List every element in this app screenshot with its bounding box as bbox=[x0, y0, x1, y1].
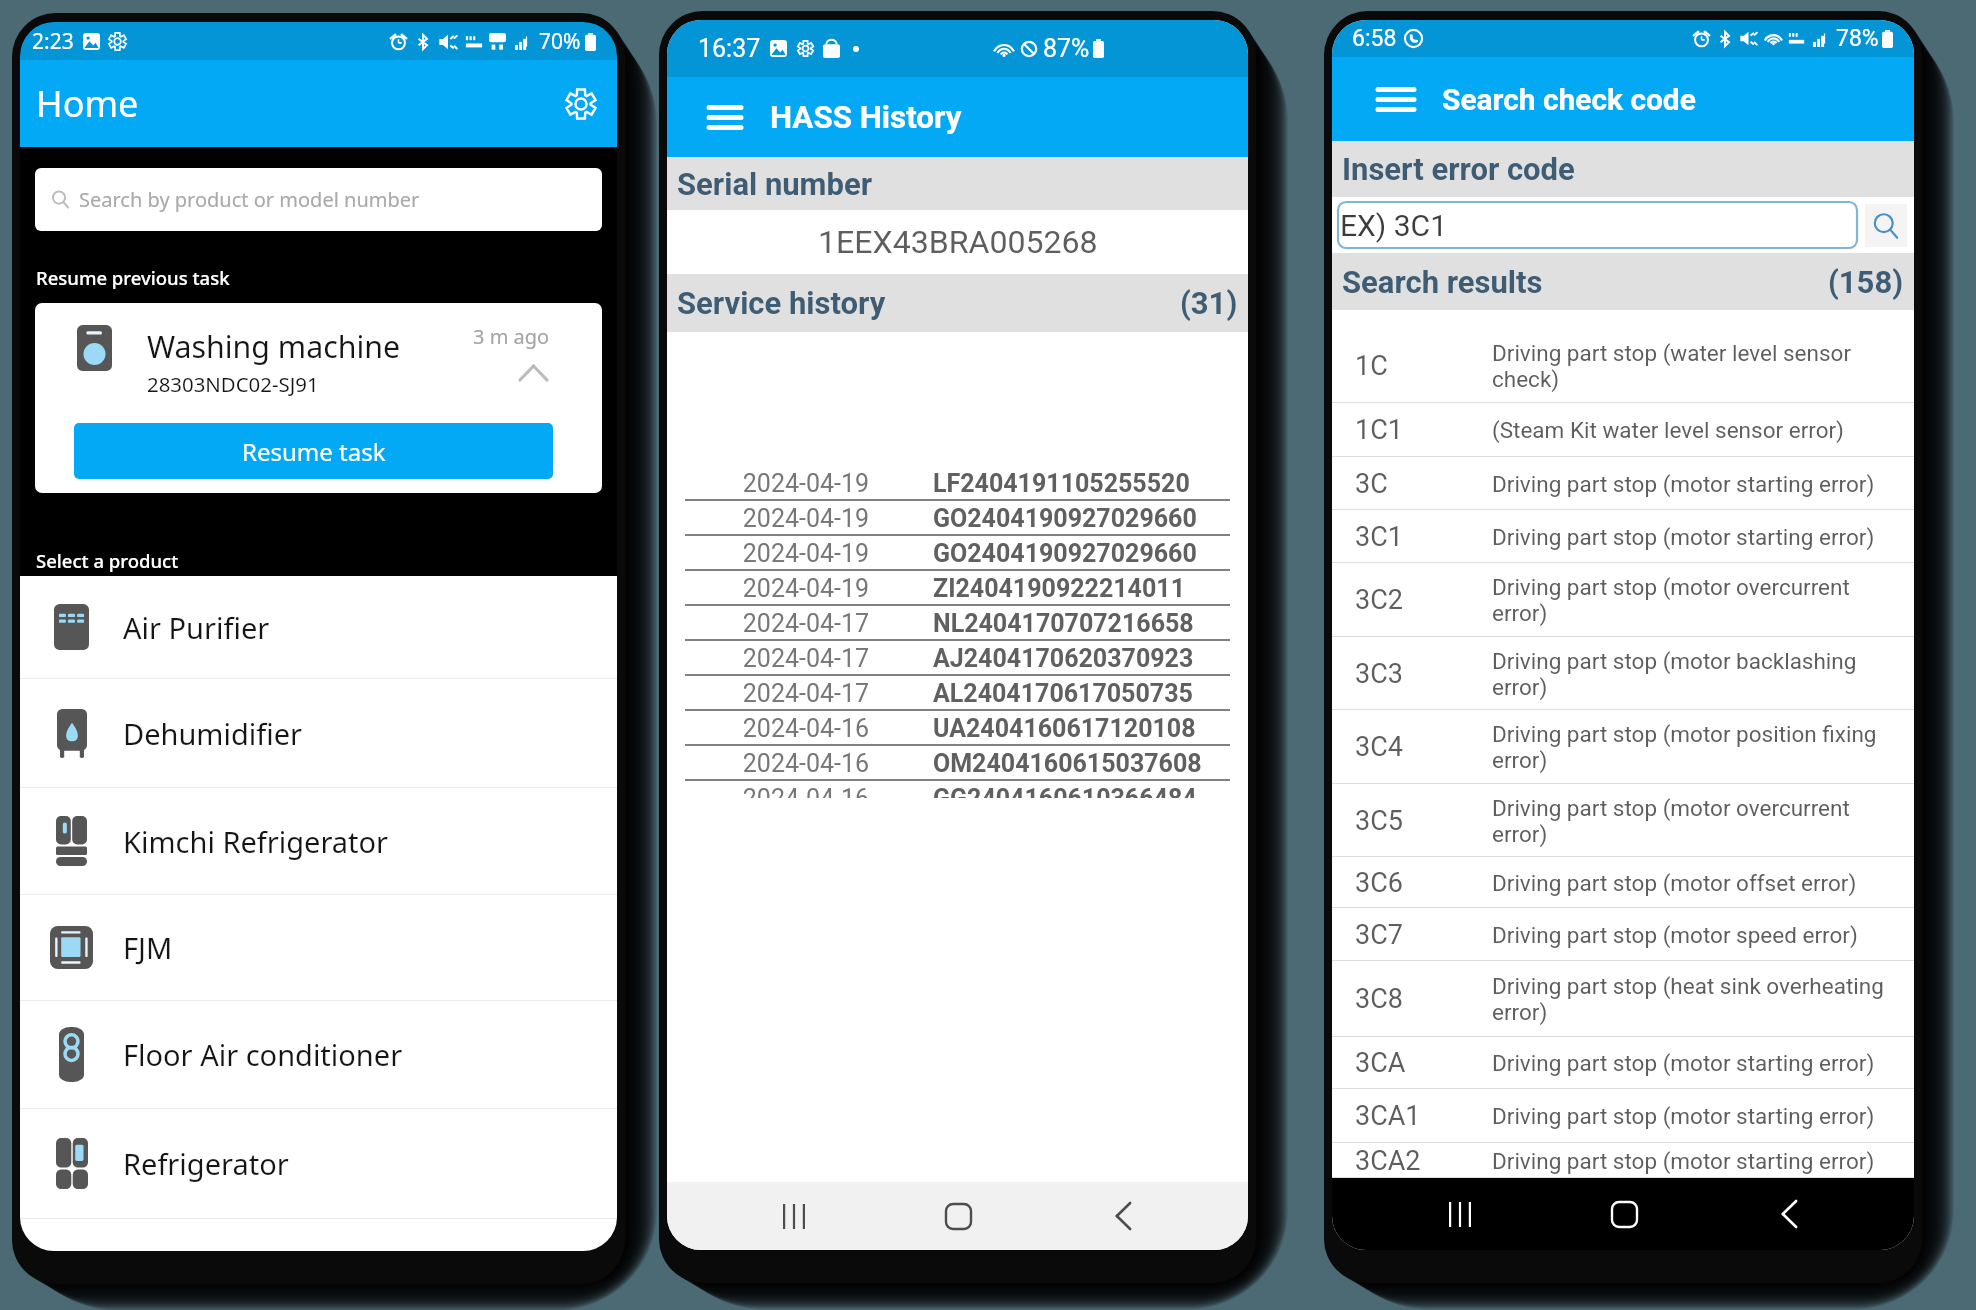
staticText: 3C1 bbox=[1355, 521, 1492, 553]
staticText: 3CA bbox=[1355, 1047, 1492, 1079]
staticText: Resume previous task bbox=[36, 265, 230, 290]
staticText: FJM bbox=[123, 928, 173, 967]
button[interactable]: 2024-04-19 bbox=[667, 571, 1248, 606]
button[interactable]: 3C3 bbox=[1332, 637, 1914, 710]
staticText: 3C2 bbox=[1355, 584, 1492, 616]
staticText: Resume task bbox=[242, 435, 386, 468]
staticText: Refrigerator bbox=[123, 1144, 289, 1183]
button[interactable]: 3C6 bbox=[1332, 857, 1914, 908]
staticText: 3C5 bbox=[1355, 805, 1492, 837]
staticText: OM2404160615037608 bbox=[933, 749, 1202, 778]
staticText: Driving part stop (water level sensor ch… bbox=[1492, 340, 1897, 392]
staticText: GO2404190927029660 bbox=[933, 539, 1197, 568]
button[interactable]: 2024-04-16 bbox=[667, 781, 1248, 798]
staticText: Driving part stop (heat sink overheating… bbox=[1492, 973, 1897, 1025]
button[interactable]: 2024-04-17 bbox=[667, 606, 1248, 641]
staticText: 3CA2 bbox=[1355, 1145, 1492, 1177]
button[interactable]: Open navigation menu bbox=[700, 92, 750, 142]
button[interactable]: Recent apps bbox=[736, 1182, 852, 1250]
button[interactable]: 3C4 bbox=[1332, 710, 1914, 784]
staticText: Driving part stop (motor starting error) bbox=[1492, 524, 1897, 550]
button[interactable]: 2024-04-19 bbox=[667, 536, 1248, 571]
button[interactable]: 3CA2 bbox=[1332, 1143, 1914, 1178]
staticText: 3C8 bbox=[1355, 983, 1492, 1015]
button[interactable]: Search by product or model number bbox=[35, 168, 602, 231]
button[interactable]: 2024-04-17 bbox=[667, 641, 1248, 676]
button[interactable]: 3C2 bbox=[1332, 563, 1914, 637]
button[interactable]: Kimchi Refrigerator bbox=[20, 788, 617, 894]
staticText: 2024-04-19 bbox=[685, 504, 869, 533]
button[interactable]: 2024-04-19 bbox=[667, 501, 1248, 536]
button[interactable]: 1C bbox=[1332, 329, 1914, 403]
staticText: 1EEX43BRA005268 bbox=[818, 223, 1098, 261]
staticText: AJ2404170620370923 bbox=[933, 644, 1194, 673]
button[interactable]: Search bbox=[1865, 204, 1907, 247]
staticText: Air Purifier bbox=[123, 608, 270, 647]
staticText: EX) 3C1 bbox=[1340, 208, 1447, 243]
staticText: Driving part stop (motor position fixing… bbox=[1492, 721, 1897, 773]
staticText: Search by product or model number bbox=[79, 186, 420, 213]
staticText: 87% bbox=[1043, 34, 1090, 63]
staticText: 1C bbox=[1355, 350, 1492, 382]
staticText: (Steam Kit water level sensor error) bbox=[1492, 417, 1897, 443]
staticText: NL2404170707216658 bbox=[933, 609, 1194, 638]
button[interactable]: Floor Air conditioner bbox=[20, 1001, 617, 1108]
button[interactable]: Recent apps bbox=[1401, 1178, 1518, 1250]
button[interactable]: 1C1 bbox=[1332, 403, 1914, 457]
staticText: 2024-04-16 bbox=[685, 714, 869, 743]
button[interactable]: 3CA bbox=[1332, 1037, 1914, 1089]
button[interactable]: Settings bbox=[557, 80, 605, 128]
button[interactable]: 3C bbox=[1332, 457, 1914, 510]
button[interactable]: 3C8 bbox=[1332, 961, 1914, 1037]
staticText: Insert error code bbox=[1342, 151, 1575, 187]
button[interactable]: 3C7 bbox=[1332, 908, 1914, 961]
staticText: 16:37 bbox=[698, 34, 761, 63]
button[interactable]: Resume task bbox=[74, 423, 553, 479]
staticText: 3C bbox=[1355, 468, 1492, 500]
staticText: 3C6 bbox=[1355, 867, 1492, 899]
button[interactable]: Back bbox=[1731, 1178, 1847, 1250]
staticText: 2024-04-17 bbox=[685, 609, 869, 638]
staticText: 3CA1 bbox=[1355, 1100, 1492, 1132]
button[interactable]: FJM bbox=[20, 895, 617, 1000]
button[interactable]: 3CA1 bbox=[1332, 1089, 1914, 1143]
staticText: Driving part stop (motor overcurrent err… bbox=[1492, 795, 1897, 847]
staticText: (31) bbox=[1180, 285, 1238, 321]
staticText: 2024-04-19 bbox=[685, 469, 869, 498]
staticText: Driving part stop (motor starting error) bbox=[1492, 471, 1897, 497]
staticText: Driving part stop (motor starting error) bbox=[1492, 1050, 1897, 1076]
staticText: 2024-04-16 bbox=[685, 749, 869, 778]
staticText: GG2404160610366484 bbox=[933, 784, 1197, 798]
button[interactable]: Home bbox=[900, 1182, 1016, 1250]
staticText: 6:58 bbox=[1352, 25, 1397, 52]
button[interactable]: Back bbox=[1065, 1182, 1181, 1250]
staticText: Driving part stop (motor speed error) bbox=[1492, 922, 1897, 948]
staticText: (158) bbox=[1828, 264, 1904, 300]
button[interactable]: Home bbox=[1566, 1178, 1682, 1250]
staticText: Search results bbox=[1342, 264, 1543, 300]
staticText: 3C4 bbox=[1355, 731, 1492, 763]
staticText: 2024-04-17 bbox=[685, 679, 869, 708]
button[interactable]: Refrigerator bbox=[20, 1109, 617, 1218]
staticText: 2024-04-19 bbox=[685, 574, 869, 603]
button[interactable]: Dehumidifier bbox=[20, 679, 617, 787]
button[interactable]: Open navigation menu bbox=[1371, 74, 1421, 124]
staticText: 2024-04-19 bbox=[685, 539, 869, 568]
button[interactable]: 2024-04-19 bbox=[667, 466, 1248, 501]
staticText: HASS History bbox=[770, 99, 962, 136]
button[interactable]: 2024-04-16 bbox=[667, 746, 1248, 781]
button[interactable]: EX) 3C1 bbox=[1338, 202, 1857, 248]
button[interactable]: 2024-04-16 bbox=[667, 711, 1248, 746]
staticText: Washing machine bbox=[147, 326, 401, 367]
staticText: 2:23 bbox=[32, 27, 74, 56]
staticText: AL2404170617050735 bbox=[933, 679, 1193, 708]
staticText: Home bbox=[36, 79, 139, 128]
button[interactable]: Washing machine bbox=[35, 303, 602, 493]
button[interactable]: 3C1 bbox=[1332, 510, 1914, 563]
button[interactable]: 2024-04-17 bbox=[667, 676, 1248, 711]
button[interactable]: 3C5 bbox=[1332, 784, 1914, 857]
button[interactable]: Air Purifier bbox=[20, 576, 617, 678]
staticText: Dehumidifier bbox=[123, 714, 303, 753]
staticText: Kimchi Refrigerator bbox=[123, 822, 389, 861]
staticText: 28303NDC02-SJ91 bbox=[147, 370, 319, 398]
